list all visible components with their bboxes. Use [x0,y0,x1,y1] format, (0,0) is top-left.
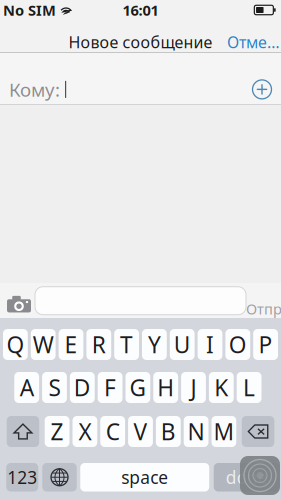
button[interactable]: E [59,329,83,360]
staticText: D [74,372,91,402]
staticText: 16:01 [122,0,158,20]
button[interactable]: L [237,372,261,403]
button[interactable]: Delete [242,416,274,447]
staticText: Z [51,416,64,446]
button[interactable]: G [125,372,150,403]
staticText: 123 [7,466,37,489]
button[interactable]: S [42,372,67,403]
staticText: L [243,372,255,402]
staticText: T [120,329,133,359]
staticText: Отме… [227,31,280,53]
button[interactable]: W [31,329,56,360]
button[interactable]: O [225,329,250,360]
staticText: W [33,329,54,359]
staticText: K [214,372,228,402]
staticText: J [190,372,196,402]
button[interactable]: N [184,416,208,447]
button[interactable]: U [170,329,195,360]
button[interactable]: K [209,372,234,403]
button[interactable]: M [211,416,236,447]
staticText: Кому: [9,77,60,102]
staticText: X [78,416,91,446]
staticText: done [226,466,268,489]
button[interactable]: I [198,329,222,360]
button[interactable]: D [70,372,95,403]
button[interactable]: R [86,329,111,360]
button[interactable]: done [214,463,280,491]
staticText: C [106,416,120,446]
staticText: No SIM [3,0,56,20]
button[interactable]: J [181,372,206,403]
button[interactable]: Z [45,416,69,447]
button[interactable]: V [128,416,153,447]
button[interactable]: F [98,372,122,403]
button[interactable]: Y [142,329,167,360]
button[interactable]: Next keyboard [42,463,77,491]
staticText: space [121,466,168,489]
button[interactable]: space [80,463,209,491]
button[interactable]: Отме… [227,20,281,53]
staticText: U [174,329,191,359]
staticText: Отпр. [246,299,281,318]
button[interactable]: B [156,416,181,447]
staticText: O [229,329,247,359]
staticText: H [157,372,174,402]
button[interactable]: Add contact [252,79,272,99]
button[interactable]: A [14,372,39,403]
button[interactable]: Q [3,329,28,360]
button[interactable]: H [153,372,178,403]
staticText: V [133,416,147,446]
staticText: I [206,329,214,359]
staticText: S [48,372,60,402]
staticText: Новое сообщение [68,31,212,53]
staticText: M [213,416,234,446]
button[interactable]: P [253,329,278,360]
staticText: B [161,416,176,446]
staticText: E [64,329,77,359]
staticText: Y [148,329,161,359]
button[interactable]: 123 [6,463,38,491]
staticText: F [104,372,116,402]
staticText: R [92,329,106,359]
staticText: A [20,372,34,402]
button[interactable]: C [100,416,125,447]
staticText: P [259,329,273,359]
staticText: Q [6,329,24,359]
button[interactable]: Camera [7,296,31,313]
button[interactable]: X [72,416,97,447]
staticText: N [188,416,205,446]
button[interactable]: T [114,329,139,360]
button[interactable]: Shift [7,416,39,447]
staticText: G [129,372,146,402]
